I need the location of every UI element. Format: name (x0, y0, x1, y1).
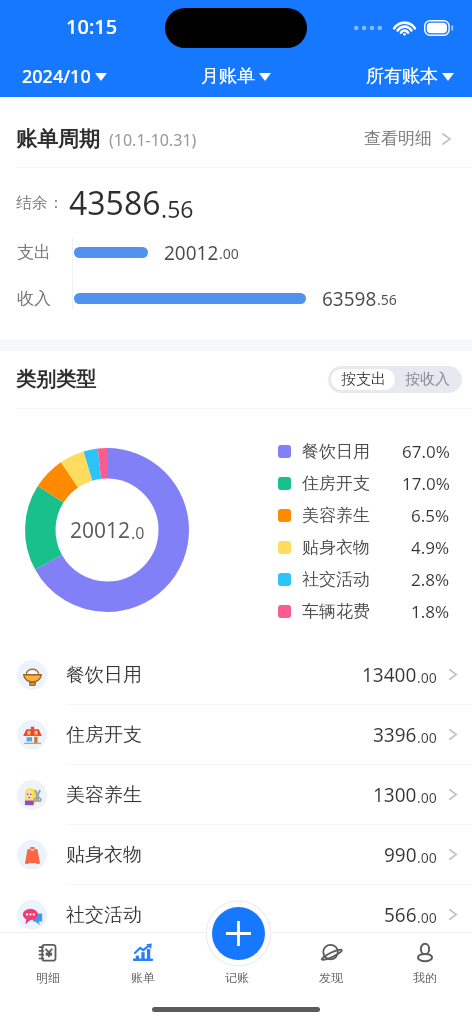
staticText: 住房开支 (66, 723, 142, 747)
staticText: (10.1-10.31) (109, 129, 197, 151)
staticText: 支出 (17, 242, 51, 263)
staticText: 住房开支 (302, 473, 370, 494)
staticText: .00 (417, 908, 437, 927)
button[interactable]: 美容养生 (0, 765, 472, 825)
staticText: 收入 (17, 288, 51, 309)
staticText: 记账 (225, 970, 249, 985)
button[interactable]: 账单周期 (16, 110, 452, 167)
staticText: 43586 (69, 181, 161, 225)
button[interactable]: 我的 (378, 932, 472, 992)
staticText: .00 (219, 244, 239, 263)
staticText: 3396 (373, 722, 417, 748)
staticText: 餐饮日用 (302, 441, 370, 462)
staticText: 6.5% (411, 504, 450, 527)
staticText: 所有账本 (366, 65, 438, 88)
staticText: 20012 (70, 516, 131, 545)
staticText: .00 (417, 788, 437, 807)
staticText: 1.8% (411, 600, 450, 623)
button[interactable]: 2024/10 (22, 59, 107, 94)
button[interactable]: 住房开支 (0, 705, 472, 765)
staticText: 车辆花费 (302, 601, 370, 622)
staticText: 67.0% (402, 440, 450, 463)
button[interactable]: 所有账本 (366, 60, 454, 93)
staticText: 按支出 (341, 370, 386, 389)
staticText: 贴身衣物 (302, 537, 370, 558)
staticText: 明细 (36, 970, 60, 985)
staticText: .00 (417, 668, 437, 687)
button[interactable]: 按支出 (331, 369, 395, 390)
staticText: 10:15 (66, 13, 118, 40)
staticText: 63598 (322, 286, 377, 310)
staticText: 查看明细 (364, 128, 432, 149)
staticText: 2024/10 (22, 64, 91, 89)
staticText: 566 (384, 902, 417, 928)
staticText: 贴身衣物 (66, 843, 142, 867)
staticText: 餐饮日用 (66, 663, 142, 687)
button[interactable]: 餐饮日用 (0, 645, 472, 705)
staticText: 我的 (413, 970, 437, 985)
staticText: .00 (417, 728, 437, 747)
staticText: 2.8% (411, 568, 450, 591)
staticText: .56 (161, 193, 194, 224)
button[interactable]: 发现 (284, 932, 378, 992)
staticText: 17.0% (402, 472, 450, 495)
button[interactable]: 记账 Add (212, 907, 265, 960)
staticText: .0 (131, 522, 145, 544)
staticText: 发现 (319, 970, 343, 985)
button[interactable]: 记账 (190, 932, 284, 992)
staticText: 按收入 (405, 370, 450, 389)
button[interactable]: 账单 (95, 932, 190, 992)
staticText: 4.9% (411, 536, 450, 559)
staticText: .56 (377, 290, 397, 309)
staticText: 月账单 (201, 65, 255, 88)
button[interactable]: 明细 (0, 932, 95, 992)
button[interactable]: 月账单 (201, 60, 271, 93)
staticText: 账单 (131, 970, 155, 985)
staticText: .00 (417, 848, 437, 867)
staticText: 结余： (16, 193, 64, 213)
button[interactable]: 贴身衣物 (0, 825, 472, 885)
staticText: 990 (384, 842, 417, 868)
staticText: 美容养生 (302, 505, 370, 526)
staticText: 社交活动 (302, 569, 370, 590)
staticText: 13400 (362, 662, 417, 688)
staticText: 美容养生 (66, 783, 142, 807)
staticText: 1300 (373, 782, 417, 808)
staticText: 社交活动 (66, 903, 142, 927)
button[interactable]: 按收入 (395, 369, 459, 390)
staticText: 账单周期 (16, 126, 100, 152)
staticText: 20012 (164, 240, 219, 264)
staticText: 类别类型 (16, 367, 96, 392)
button[interactable]: 社交活动 (0, 885, 472, 945)
